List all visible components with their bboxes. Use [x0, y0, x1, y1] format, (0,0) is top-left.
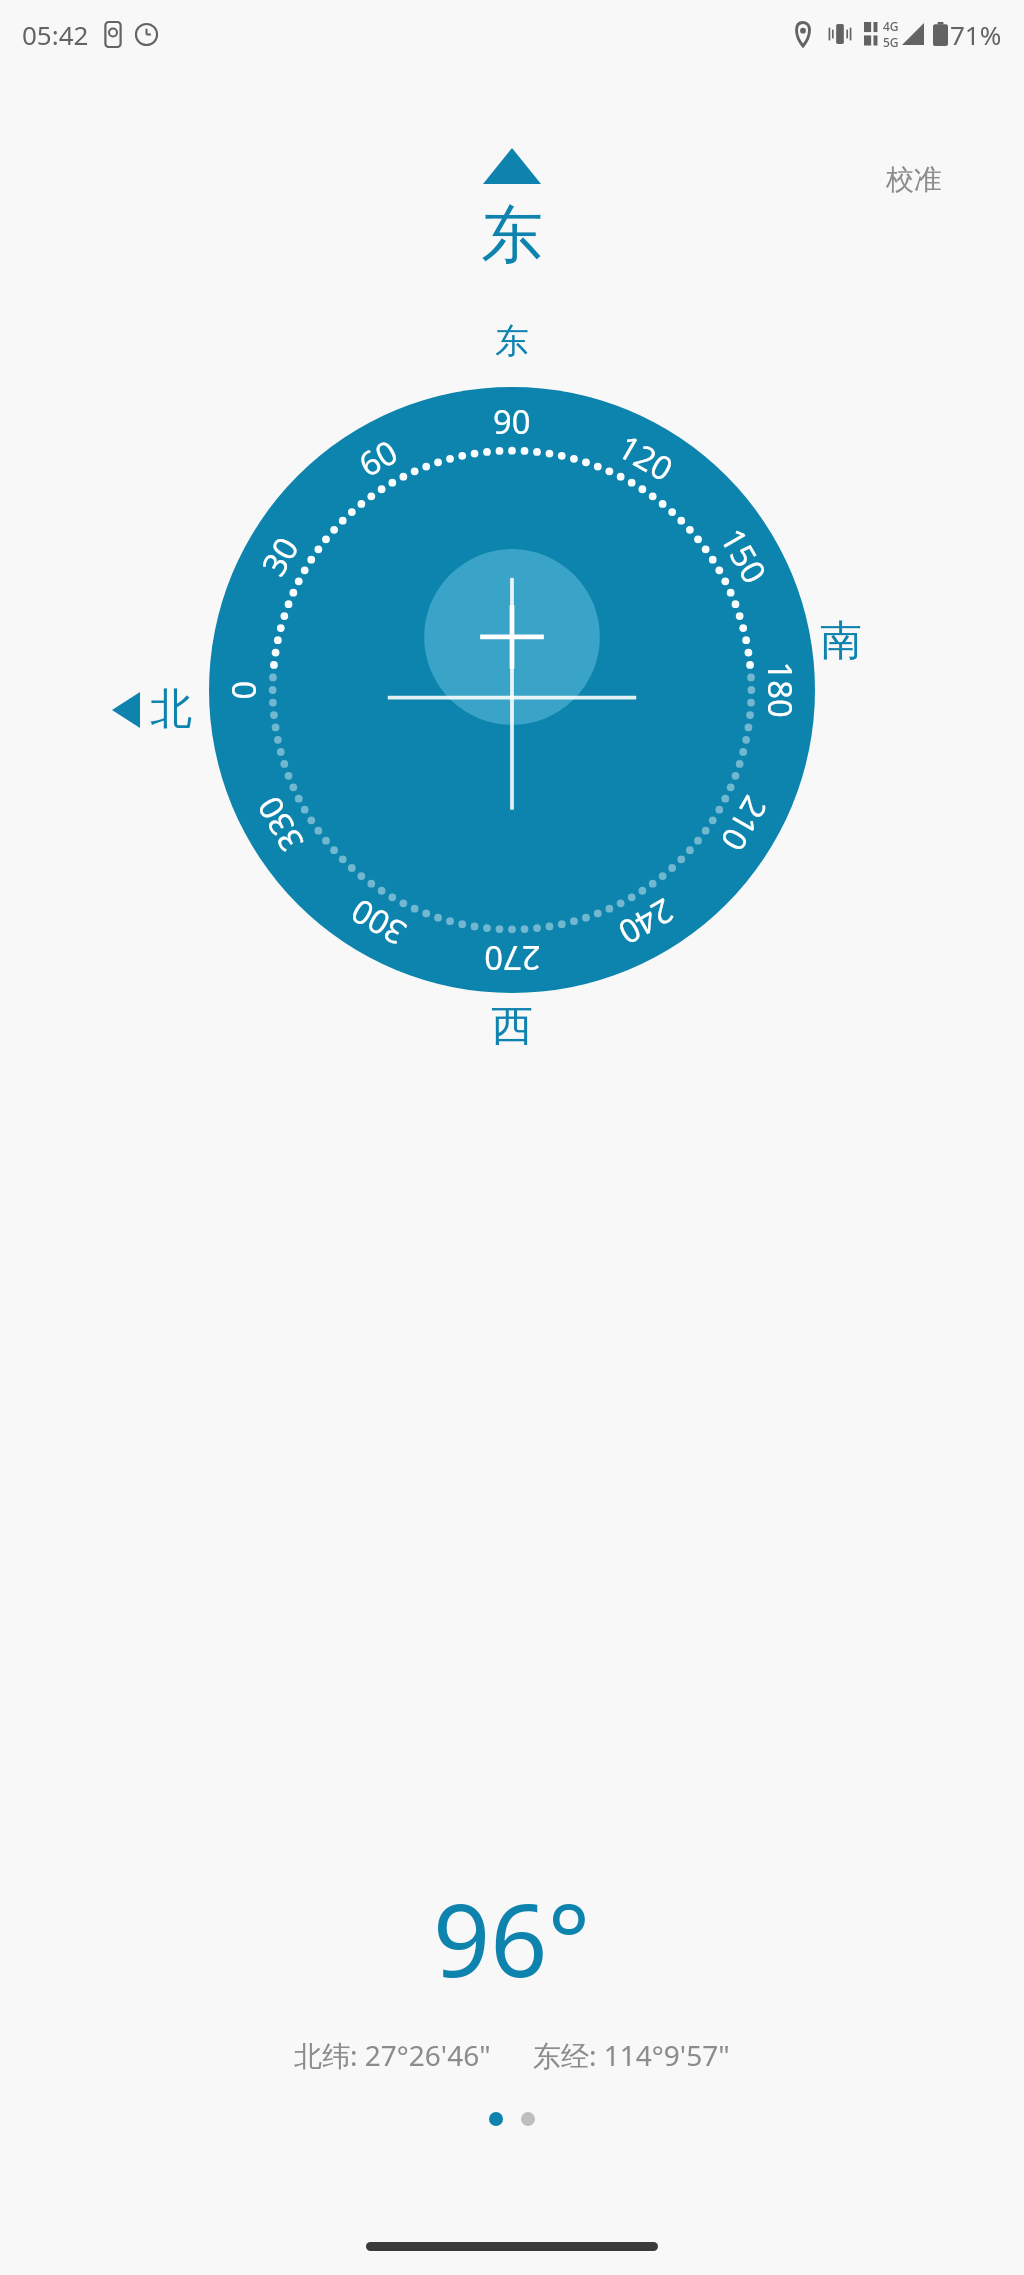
staticText: 北	[150, 683, 192, 736]
staticText: 南	[820, 615, 862, 668]
staticText: 05:42	[22, 17, 89, 52]
staticText: 东	[495, 320, 529, 363]
staticText: 5G	[883, 34, 899, 50]
staticText: 4G	[883, 18, 899, 34]
staticText: 北纬: 27°26'46"	[294, 2036, 491, 2074]
staticText: 西	[491, 1000, 533, 1053]
staticText: 校准	[886, 162, 942, 197]
staticText: 东经: 114°9'57"	[533, 2036, 730, 2074]
staticText: 71%	[950, 17, 1002, 52]
button[interactable]: 校准	[880, 158, 948, 201]
staticText: 96°	[433, 1870, 591, 2006]
staticText: 东	[481, 196, 543, 274]
